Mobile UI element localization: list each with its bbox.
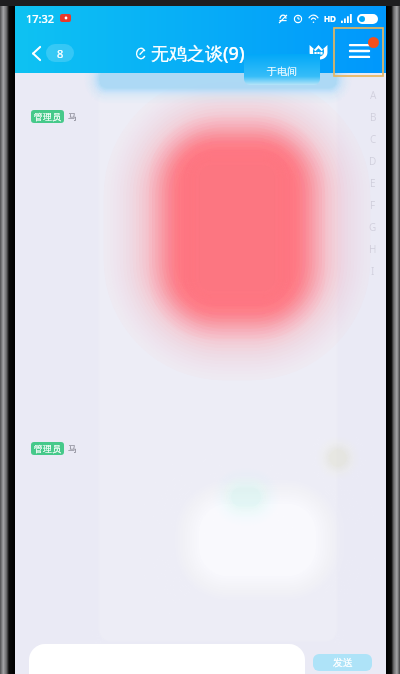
staticText: D — [369, 154, 377, 168]
staticText: A — [370, 88, 377, 102]
staticText: I — [371, 264, 375, 278]
staticText: 管理员 — [34, 443, 61, 454]
staticText: HD — [324, 13, 336, 24]
staticText: B — [370, 110, 377, 124]
staticText: 马 — [68, 111, 77, 122]
button[interactable]: 发送 — [313, 654, 372, 671]
staticText: F — [370, 198, 376, 212]
staticText: 发送 — [333, 656, 353, 669]
staticText: G — [369, 220, 377, 234]
staticText: C — [370, 132, 377, 146]
button[interactable]: Sticker — [303, 37, 333, 67]
staticText: 8 — [57, 46, 64, 61]
staticText: E — [370, 176, 376, 190]
button[interactable]: 于电间 — [244, 54, 320, 85]
staticText: 于电间 — [267, 65, 297, 78]
button[interactable]: Back — [28, 39, 78, 67]
other: Back — [32, 46, 41, 61]
button[interactable]: Menu — [335, 28, 383, 75]
staticText: 管理员 — [34, 111, 61, 122]
staticText: H — [369, 242, 377, 256]
staticText: 马 — [68, 443, 77, 454]
staticText: 17:32 — [26, 11, 55, 26]
staticText: 无鸡之谈(9) — [151, 41, 245, 66]
